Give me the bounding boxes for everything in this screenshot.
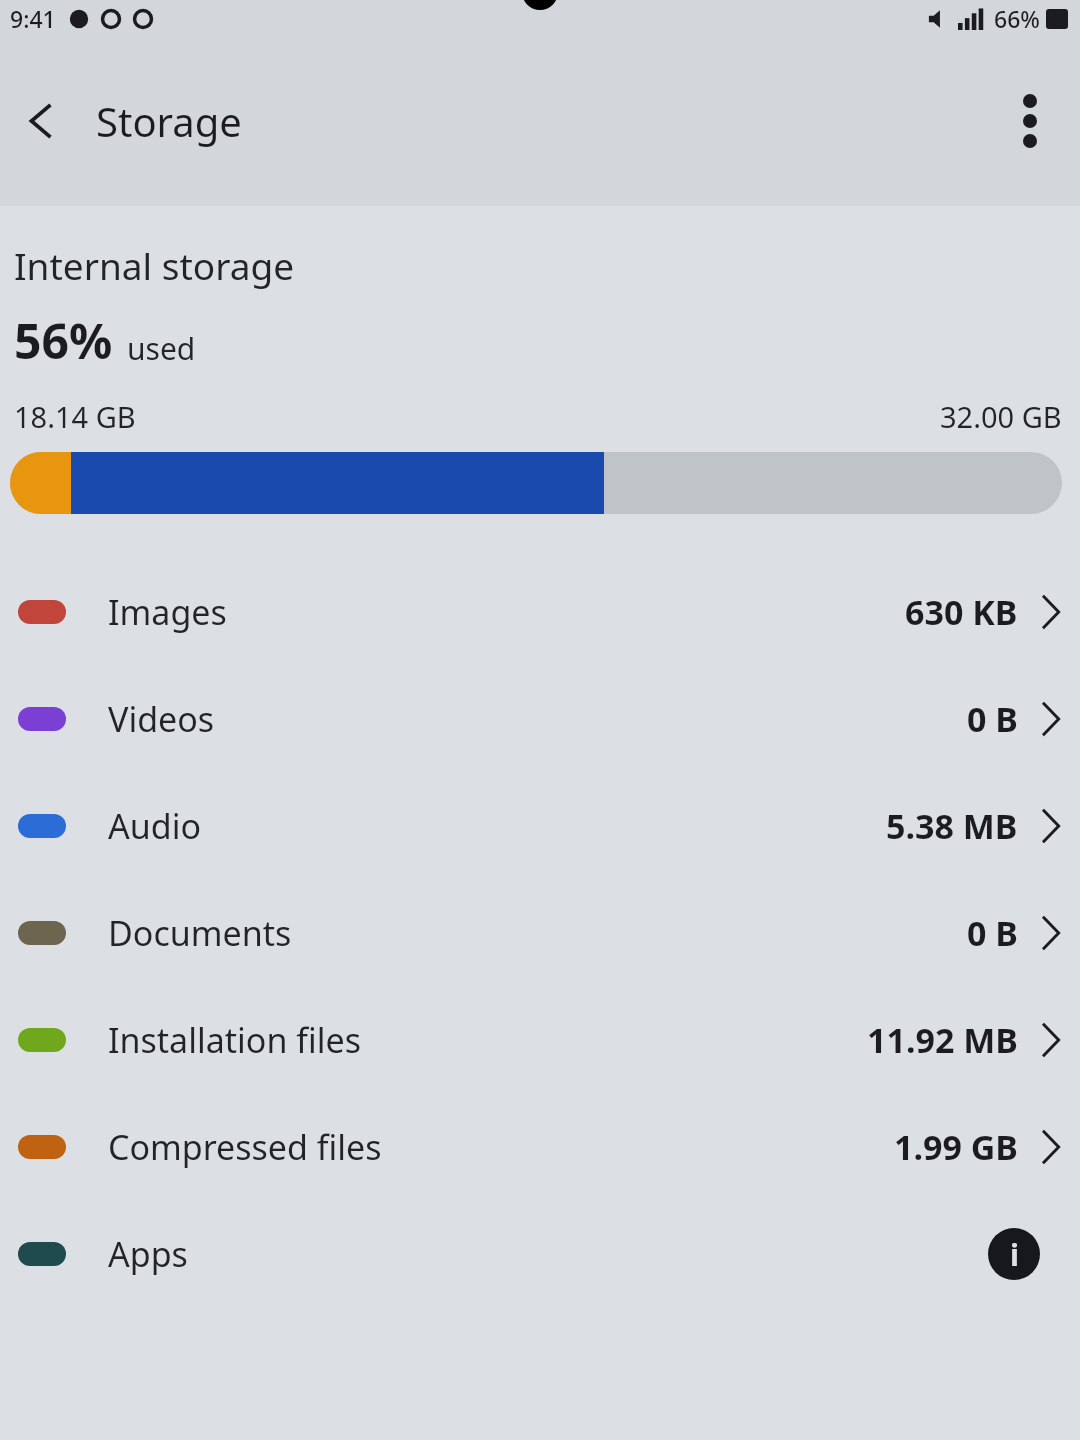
staticText: Videos (108, 696, 215, 742)
staticText: 1.99 GB (894, 1124, 1018, 1170)
staticText: Apps (108, 1231, 188, 1277)
button[interactable]: Images (0, 558, 1080, 665)
staticText: i (1010, 1234, 1019, 1275)
staticText: 630 KB (905, 589, 1018, 635)
staticText: Internal storage (14, 240, 295, 290)
button[interactable]: Compressed files (0, 1093, 1080, 1200)
staticText: 11.92 MB (867, 1017, 1018, 1063)
staticText: 5.38 MB (886, 803, 1018, 849)
staticText: Images (108, 589, 227, 635)
staticText: Documents (108, 910, 292, 956)
staticText: 56% (14, 308, 113, 373)
staticText: 9:41 (10, 3, 56, 34)
staticText: 0 B (967, 910, 1018, 956)
button[interactable]: Audio (0, 772, 1080, 879)
button[interactable]: More options (990, 81, 1070, 161)
staticText: 0 B (967, 696, 1018, 742)
button[interactable]: Back (6, 85, 78, 157)
button[interactable]: Installation files (0, 986, 1080, 1093)
staticText: used (127, 328, 196, 369)
button[interactable]: Videos (0, 665, 1080, 772)
staticText: 18.14 GB (14, 397, 136, 436)
staticText: Storage (96, 94, 242, 148)
button[interactable]: About apps (988, 1228, 1040, 1280)
staticText: Compressed files (108, 1124, 382, 1170)
staticText: 66% (994, 3, 1040, 34)
button[interactable]: Apps (0, 1200, 1080, 1307)
button[interactable]: Documents (0, 879, 1080, 986)
staticText: Audio (108, 803, 201, 849)
staticText: Installation files (108, 1017, 361, 1063)
staticText: 32.00 GB (940, 397, 1062, 436)
